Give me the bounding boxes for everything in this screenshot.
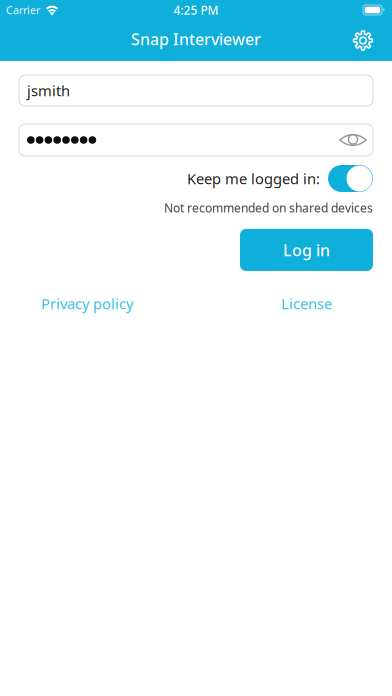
staticText: jsmith — [27, 81, 70, 100]
staticText: Carrier — [6, 3, 40, 17]
staticText: Snap Interviewer — [131, 28, 261, 50]
button[interactable] — [19, 124, 373, 156]
button[interactable]: Log in — [240, 229, 373, 271]
staticText: Privacy policy — [41, 294, 133, 313]
staticText: Not recommended on shared devices — [164, 200, 373, 216]
button[interactable]: Keep me logged in — [328, 165, 373, 192]
staticText: License — [281, 294, 332, 313]
staticText: Keep me logged in: — [187, 169, 320, 188]
button[interactable]: jsmith — [19, 75, 373, 106]
staticText: 4:25 PM — [173, 2, 218, 18]
button[interactable]: Privacy policy — [41, 294, 133, 313]
button[interactable]: Settings — [343, 20, 383, 61]
staticText: Log in — [283, 239, 330, 260]
button[interactable]: License — [281, 294, 332, 313]
